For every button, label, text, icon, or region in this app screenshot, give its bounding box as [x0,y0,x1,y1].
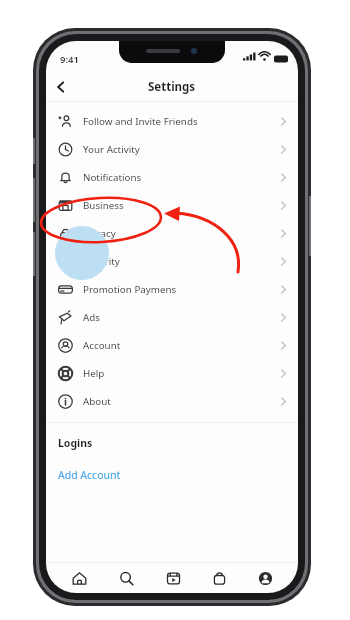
button[interactable]: Ads [46,303,298,331]
staticText: Privacy [83,227,116,240]
button[interactable]: Back [46,73,76,101]
button[interactable]: Your Activity [46,135,298,163]
staticText: Add Account [58,468,121,482]
button[interactable]: Search [103,563,150,593]
staticText: Ads [83,311,100,324]
button[interactable]: Help [46,359,298,387]
button[interactable]: Profile [242,563,288,593]
button[interactable]: Follow and Invite Friends [46,107,298,135]
button[interactable]: Account [46,331,298,359]
button[interactable]: Reels [150,563,196,593]
staticText: Follow and Invite Friends [83,115,198,128]
staticText: Notifications [83,171,142,184]
button[interactable]: Business [46,191,298,219]
staticText: Logins [58,436,93,450]
staticText: 9:41 [60,53,79,66]
button[interactable]: Home [56,563,103,593]
button[interactable]: About [46,387,298,415]
staticText: Your Activity [83,143,140,156]
button[interactable]: Notifications [46,163,298,191]
button[interactable]: Add Account [46,450,298,490]
staticText: Help [83,367,105,380]
staticText: Business [83,199,124,212]
staticText: Settings [148,79,196,95]
staticText: Account [83,339,121,352]
staticText: About [83,395,111,408]
staticText: Security [83,255,120,268]
staticText: Promotion Paymens [83,283,177,296]
button[interactable]: Promotion Paymens [46,275,298,303]
button[interactable]: Security [46,247,298,275]
button[interactable]: Shop [196,563,242,593]
button[interactable]: Privacy [46,219,298,247]
